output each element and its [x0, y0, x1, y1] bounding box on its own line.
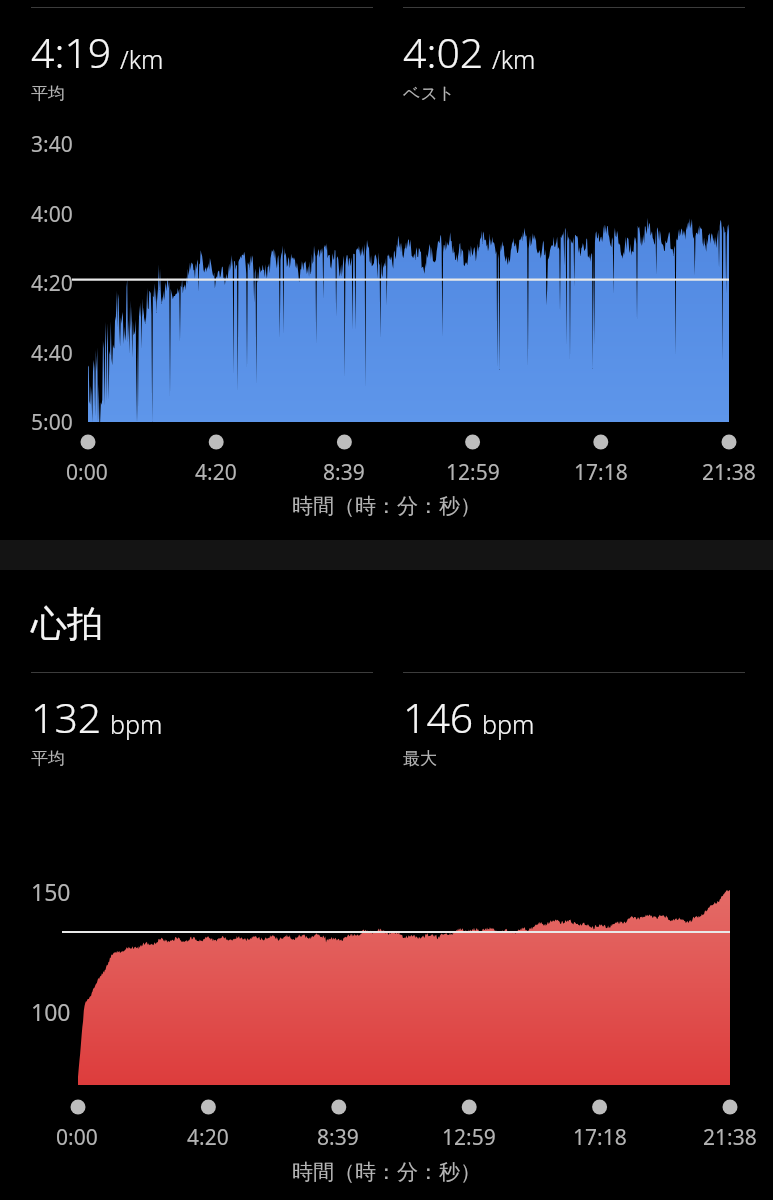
staticText: 4:02: [403, 24, 484, 80]
button[interactable]: 4:19: [31, 7, 373, 104]
staticText: bpm: [110, 707, 163, 741]
staticText: 17:18: [574, 458, 628, 487]
button[interactable]: ペースと心拍のグラフ: [0, 0, 773, 1200]
button[interactable]: 132: [31, 672, 373, 769]
staticText: 0:00: [56, 1123, 98, 1152]
staticText: /km: [120, 42, 164, 76]
staticText: 4:20: [31, 269, 73, 298]
staticText: 100: [31, 996, 71, 1027]
staticText: 8:39: [323, 458, 365, 487]
staticText: 時間（時：分：秒）: [292, 1159, 481, 1185]
staticText: 4:20: [195, 458, 237, 487]
staticText: 21:38: [703, 1123, 757, 1152]
staticText: 平均: [31, 748, 65, 769]
staticText: 4:40: [31, 339, 73, 368]
staticText: 心拍: [31, 601, 103, 646]
staticText: 17:18: [573, 1123, 627, 1152]
staticText: 4:19: [31, 24, 112, 80]
staticText: 時間（時：分：秒）: [292, 493, 481, 519]
staticText: 4:00: [31, 200, 73, 229]
staticText: 3:40: [31, 130, 73, 159]
staticText: 最大: [403, 748, 437, 769]
staticText: 平均: [31, 83, 65, 104]
staticText: 146: [403, 689, 474, 745]
button[interactable]: 4:02: [403, 7, 745, 104]
staticText: 5:00: [31, 408, 73, 437]
staticText: 132: [31, 689, 102, 745]
staticText: 12:59: [442, 1123, 496, 1152]
staticText: 4:20: [187, 1123, 229, 1152]
staticText: bpm: [482, 707, 535, 741]
staticText: 150: [31, 876, 71, 907]
staticText: 21:38: [702, 458, 756, 487]
staticText: 0:00: [66, 458, 108, 487]
staticText: 8:39: [317, 1123, 359, 1152]
staticText: /km: [492, 42, 536, 76]
staticText: 12:59: [446, 458, 500, 487]
button[interactable]: 146: [403, 672, 745, 769]
staticText: ベスト: [403, 83, 456, 104]
